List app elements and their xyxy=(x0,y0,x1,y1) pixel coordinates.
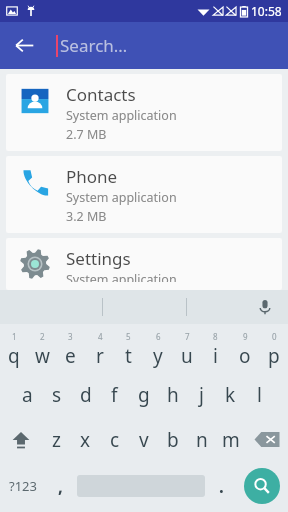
button[interactable]: Backspace xyxy=(245,417,288,462)
button[interactable]: Back xyxy=(0,22,48,69)
staticText: v xyxy=(139,427,149,453)
staticText: t xyxy=(125,343,132,369)
staticText: 3.2 MB xyxy=(66,208,107,225)
button[interactable]: 8 xyxy=(201,327,230,372)
button[interactable]: 0 xyxy=(259,327,288,372)
button[interactable]: 9 xyxy=(230,327,259,372)
staticText: 4 xyxy=(98,331,103,342)
button[interactable]: x xyxy=(71,417,100,462)
button[interactable]: 4 xyxy=(85,327,114,372)
staticText: 6 xyxy=(156,331,161,342)
staticText: u xyxy=(181,343,193,369)
staticText: 3 xyxy=(68,331,73,342)
staticText: f xyxy=(111,382,118,408)
staticText: System application xyxy=(66,107,177,124)
staticText: 2.7 MB xyxy=(66,126,107,143)
button[interactable]: ?123 xyxy=(0,462,46,510)
staticText: System application xyxy=(66,189,177,206)
staticText: Search… xyxy=(60,34,128,57)
staticText: d xyxy=(80,382,92,408)
staticText: e xyxy=(65,343,76,369)
button[interactable]: . xyxy=(207,462,236,510)
staticText: p xyxy=(268,343,280,369)
staticText: 9 xyxy=(243,331,248,342)
staticText: y xyxy=(153,343,163,369)
staticText: z xyxy=(52,427,61,453)
button[interactable]: n xyxy=(187,417,216,462)
staticText: Phone xyxy=(66,165,118,188)
staticText: ?123 xyxy=(9,477,37,495)
staticText: 2 xyxy=(40,331,45,342)
staticText: s xyxy=(52,382,62,408)
button[interactable]: m xyxy=(216,417,245,462)
staticText: x xyxy=(80,427,91,453)
staticText: n xyxy=(196,427,208,453)
button[interactable]: v xyxy=(129,417,158,462)
staticText: , xyxy=(58,475,63,498)
staticText: 10:58 xyxy=(251,3,282,19)
button[interactable]: 3 xyxy=(56,327,85,372)
staticText: a xyxy=(22,382,33,408)
button[interactable]: c xyxy=(100,417,129,462)
button[interactable]: Phone xyxy=(6,156,282,233)
button[interactable]: 7 xyxy=(172,327,201,372)
button[interactable]: g xyxy=(129,372,158,417)
staticText: l xyxy=(257,382,262,408)
staticText: c xyxy=(110,427,120,453)
staticText: 7 xyxy=(185,331,190,342)
staticText: m xyxy=(222,427,240,453)
button[interactable]: 6 xyxy=(143,327,172,372)
staticText: 8 xyxy=(213,331,218,342)
staticText: b xyxy=(167,427,179,453)
staticText: Settings xyxy=(66,247,131,270)
button[interactable]: , xyxy=(46,462,75,510)
staticText: h xyxy=(167,382,179,408)
button[interactable]: z xyxy=(42,417,71,462)
button[interactable]: j xyxy=(187,372,216,417)
staticText: Contacts xyxy=(66,83,136,106)
staticText: o xyxy=(239,343,251,369)
button[interactable]: 1 xyxy=(0,327,28,372)
staticText: System application xyxy=(66,271,177,282)
button[interactable]: 5 xyxy=(114,327,143,372)
button[interactable]: Voice input xyxy=(250,292,280,322)
button[interactable]: Search xyxy=(244,468,280,504)
button[interactable]: Settings xyxy=(6,238,282,290)
staticText: . xyxy=(219,475,224,498)
staticText: w xyxy=(35,343,50,369)
button[interactable]: b xyxy=(158,417,187,462)
button[interactable]: s xyxy=(42,372,71,417)
staticText: k xyxy=(225,382,236,408)
staticText: q xyxy=(8,343,20,369)
button[interactable]: 2 xyxy=(28,327,56,372)
button[interactable]: a xyxy=(13,372,42,417)
button[interactable]: k xyxy=(216,372,245,417)
staticText: 0 xyxy=(272,331,277,342)
staticText: r xyxy=(96,343,104,369)
button[interactable]: Shift xyxy=(0,417,42,462)
staticText: g xyxy=(138,382,150,408)
staticText: 1 xyxy=(12,331,17,342)
staticText: 5 xyxy=(126,331,131,342)
button[interactable]: h xyxy=(158,372,187,417)
button[interactable]: d xyxy=(71,372,100,417)
staticText: j xyxy=(199,382,204,408)
staticText: i xyxy=(213,343,218,369)
button[interactable]: l xyxy=(245,372,274,417)
button[interactable]: Contacts xyxy=(6,74,282,151)
button[interactable]: f xyxy=(100,372,129,417)
